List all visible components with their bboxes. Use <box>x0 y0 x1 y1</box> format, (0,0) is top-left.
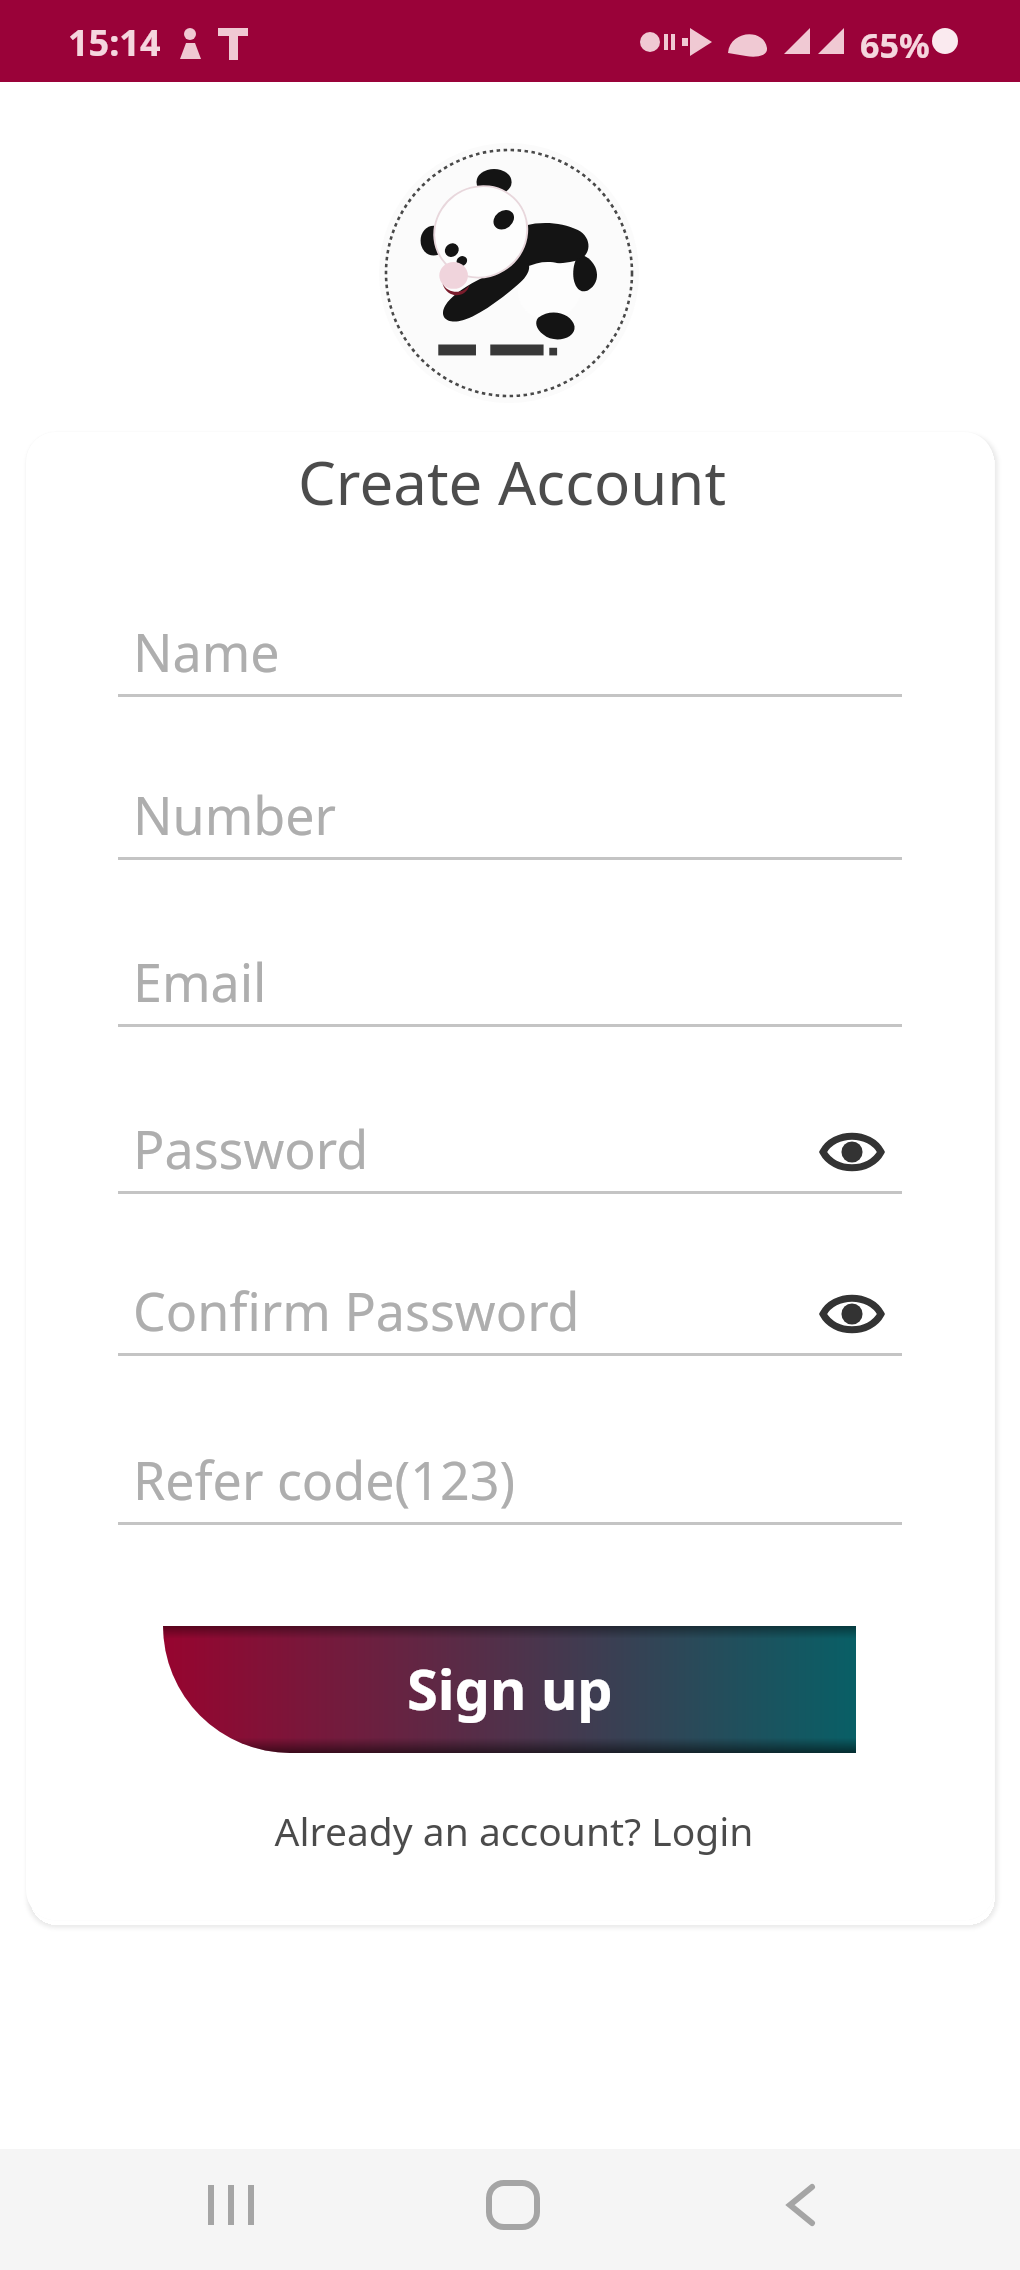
button[interactable]: Toggle password visibility <box>811 1111 893 1193</box>
staticText: Confirm Password <box>133 1275 580 1346</box>
button[interactable]: Sign up <box>163 1626 856 1753</box>
button[interactable]: Home <box>463 2144 563 2265</box>
button[interactable]: Password <box>118 1079 902 1194</box>
button[interactable]: Recents <box>181 2144 281 2265</box>
button[interactable]: Already an account? Login <box>269 1799 759 1861</box>
staticText: Password <box>133 1113 369 1184</box>
staticText: 65% <box>860 22 930 68</box>
staticText: Create Account <box>2 441 1020 523</box>
button[interactable]: Number <box>118 745 902 860</box>
button[interactable]: Back <box>751 2144 851 2265</box>
button[interactable]: Toggle password visibility <box>811 1273 893 1355</box>
staticText: Already an account? Login <box>269 1804 759 1857</box>
button[interactable]: Confirm Password <box>118 1241 902 1356</box>
staticText: Refer code(123) <box>133 1444 516 1515</box>
staticText: 15:14 <box>68 18 161 67</box>
button[interactable]: Email <box>118 912 902 1027</box>
staticText: Sign up <box>407 1650 613 1726</box>
button[interactable]: Refer code(123) <box>118 1410 902 1525</box>
button[interactable]: Name <box>118 582 902 697</box>
staticText: Number <box>133 779 337 850</box>
staticText: Email <box>133 946 267 1017</box>
staticText: Name <box>133 616 280 687</box>
